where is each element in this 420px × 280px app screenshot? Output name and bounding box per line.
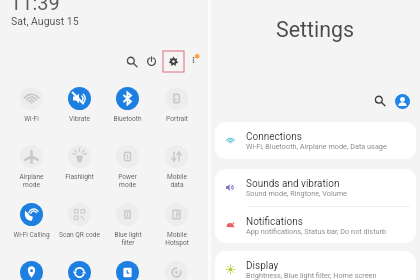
staticText: Notifications xyxy=(246,216,303,228)
button[interactable]: Flashlight xyxy=(55,145,103,203)
staticText: Flashlight xyxy=(65,173,94,181)
staticText: Sat, August 15 xyxy=(11,15,79,27)
button[interactable]: More options xyxy=(187,51,204,68)
button[interactable]: Sounds and vibration xyxy=(215,169,416,206)
button[interactable]: Connections xyxy=(215,122,416,159)
staticText: Wi-Fi Calling xyxy=(13,231,50,239)
button[interactable]: Power off xyxy=(143,53,160,70)
button[interactable]: Search xyxy=(123,53,140,70)
button[interactable]: Wi-Fi Calling xyxy=(7,203,55,261)
button[interactable]: Scan QR code xyxy=(55,203,103,261)
staticText: Brightness, Blue light filter, Home scre… xyxy=(246,271,377,280)
button[interactable]: Airplane mode xyxy=(7,145,55,203)
button[interactable] xyxy=(55,261,103,280)
staticText: App notifications, Status bar, Do not di… xyxy=(246,227,387,236)
staticText: Portrait xyxy=(166,115,188,123)
staticText: Mobile Hotspot xyxy=(165,231,189,247)
staticText: 11:39 xyxy=(10,0,60,14)
button[interactable]: Notifications xyxy=(215,207,416,243)
button[interactable]: Account xyxy=(395,94,410,109)
button[interactable]: Power mode xyxy=(103,145,152,203)
button[interactable] xyxy=(152,261,201,280)
staticText: Airplane mode xyxy=(19,173,44,189)
staticText: Power mode xyxy=(118,173,137,189)
staticText: Sounds and vibration xyxy=(246,178,340,190)
staticText: Settings xyxy=(276,17,355,42)
button[interactable]: Display xyxy=(215,251,416,280)
button[interactable]: Mobile Hotspot xyxy=(152,203,201,261)
button[interactable]: Wi-Fi xyxy=(7,87,55,145)
staticText: Display xyxy=(246,260,279,272)
staticText: Connections xyxy=(246,131,302,143)
button[interactable]: Portrait xyxy=(152,87,201,145)
staticText: Vibrate xyxy=(69,115,90,123)
staticText: Blue light filter xyxy=(114,231,142,247)
button[interactable]: Mobile data xyxy=(152,145,201,203)
staticText: Wi-Fi xyxy=(24,115,39,123)
button[interactable]: Vibrate xyxy=(55,87,103,145)
button[interactable]: Bluetooth xyxy=(103,87,152,145)
staticText: Mobile data xyxy=(167,173,187,189)
button[interactable]: Blue light filter xyxy=(103,203,152,261)
button[interactable]: Search settings xyxy=(371,92,388,109)
staticText: Wi-Fi, Bluetooth, Airplane mode, Data us… xyxy=(246,142,387,151)
button[interactable] xyxy=(103,261,152,280)
button[interactable] xyxy=(7,261,55,280)
staticText: Bluetooth xyxy=(113,115,142,123)
staticText: Scan QR code xyxy=(59,231,100,239)
button[interactable]: Settings xyxy=(163,51,184,72)
staticText: Sound mode, Ringtone, Volume xyxy=(246,189,347,198)
